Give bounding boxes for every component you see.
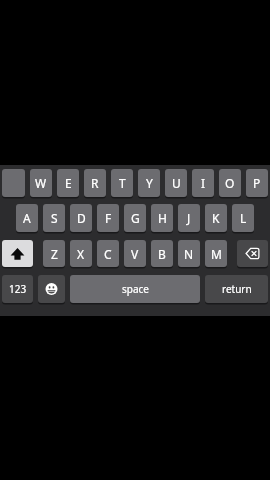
button[interactable]: L (232, 204, 254, 232)
staticText: P (253, 175, 261, 191)
button[interactable]: F (97, 204, 119, 232)
button[interactable]: Z (43, 240, 65, 267)
staticText: F (105, 210, 112, 226)
staticText: I (201, 175, 206, 191)
staticText: H (158, 210, 167, 226)
button[interactable]: T (111, 169, 133, 197)
button[interactable]: K (205, 204, 227, 232)
button[interactable]: O (219, 169, 241, 197)
staticText: return (222, 282, 252, 296)
staticText: N (184, 246, 194, 262)
button[interactable]: B (151, 240, 173, 267)
staticText: X (77, 246, 85, 262)
staticText: K (212, 210, 220, 226)
button[interactable]: E (57, 169, 79, 197)
button[interactable]: space (70, 275, 200, 303)
button[interactable]: R (84, 169, 106, 197)
staticText: B (158, 246, 166, 262)
button[interactable]: J (178, 204, 200, 232)
button[interactable]: A (16, 204, 38, 232)
button[interactable]: P (246, 169, 268, 197)
staticText: S (51, 210, 58, 226)
button[interactable]: H (151, 204, 173, 232)
button[interactable]: X (70, 240, 92, 267)
staticText: W (35, 175, 47, 191)
button[interactable]: V (124, 240, 146, 267)
staticText: V (131, 246, 139, 262)
staticText: Z (51, 246, 58, 262)
staticText: G (131, 210, 140, 226)
staticText: L (240, 210, 247, 226)
staticText: U (172, 175, 181, 191)
button[interactable]: Emoji (38, 275, 65, 303)
button[interactable]: U (165, 169, 187, 197)
staticText: M (211, 246, 222, 262)
button[interactable]: Backspace (237, 240, 268, 267)
staticText: C (104, 246, 112, 262)
staticText: A (23, 210, 31, 226)
button[interactable]: S (43, 204, 65, 232)
button[interactable]: G (124, 204, 146, 232)
staticText: Y (146, 175, 153, 191)
button[interactable]: Shift (2, 240, 33, 267)
staticText: space (122, 282, 149, 296)
staticText: E (65, 175, 72, 191)
button[interactable]: M (205, 240, 227, 267)
staticText: O (225, 175, 235, 191)
button[interactable]: N (178, 240, 200, 267)
staticText: 123 (9, 282, 27, 296)
button[interactable]: Y (138, 169, 160, 197)
button[interactable]: D (70, 204, 92, 232)
button[interactable]: return (205, 275, 268, 303)
button[interactable]: W (30, 169, 52, 197)
staticText: D (77, 210, 86, 226)
button[interactable]: 123 (2, 275, 33, 303)
staticText: R (91, 175, 99, 191)
button[interactable] (2, 169, 25, 197)
staticText: T (119, 175, 126, 191)
button[interactable]: C (97, 240, 119, 267)
button[interactable]: I (192, 169, 214, 197)
staticText: J (187, 210, 191, 226)
